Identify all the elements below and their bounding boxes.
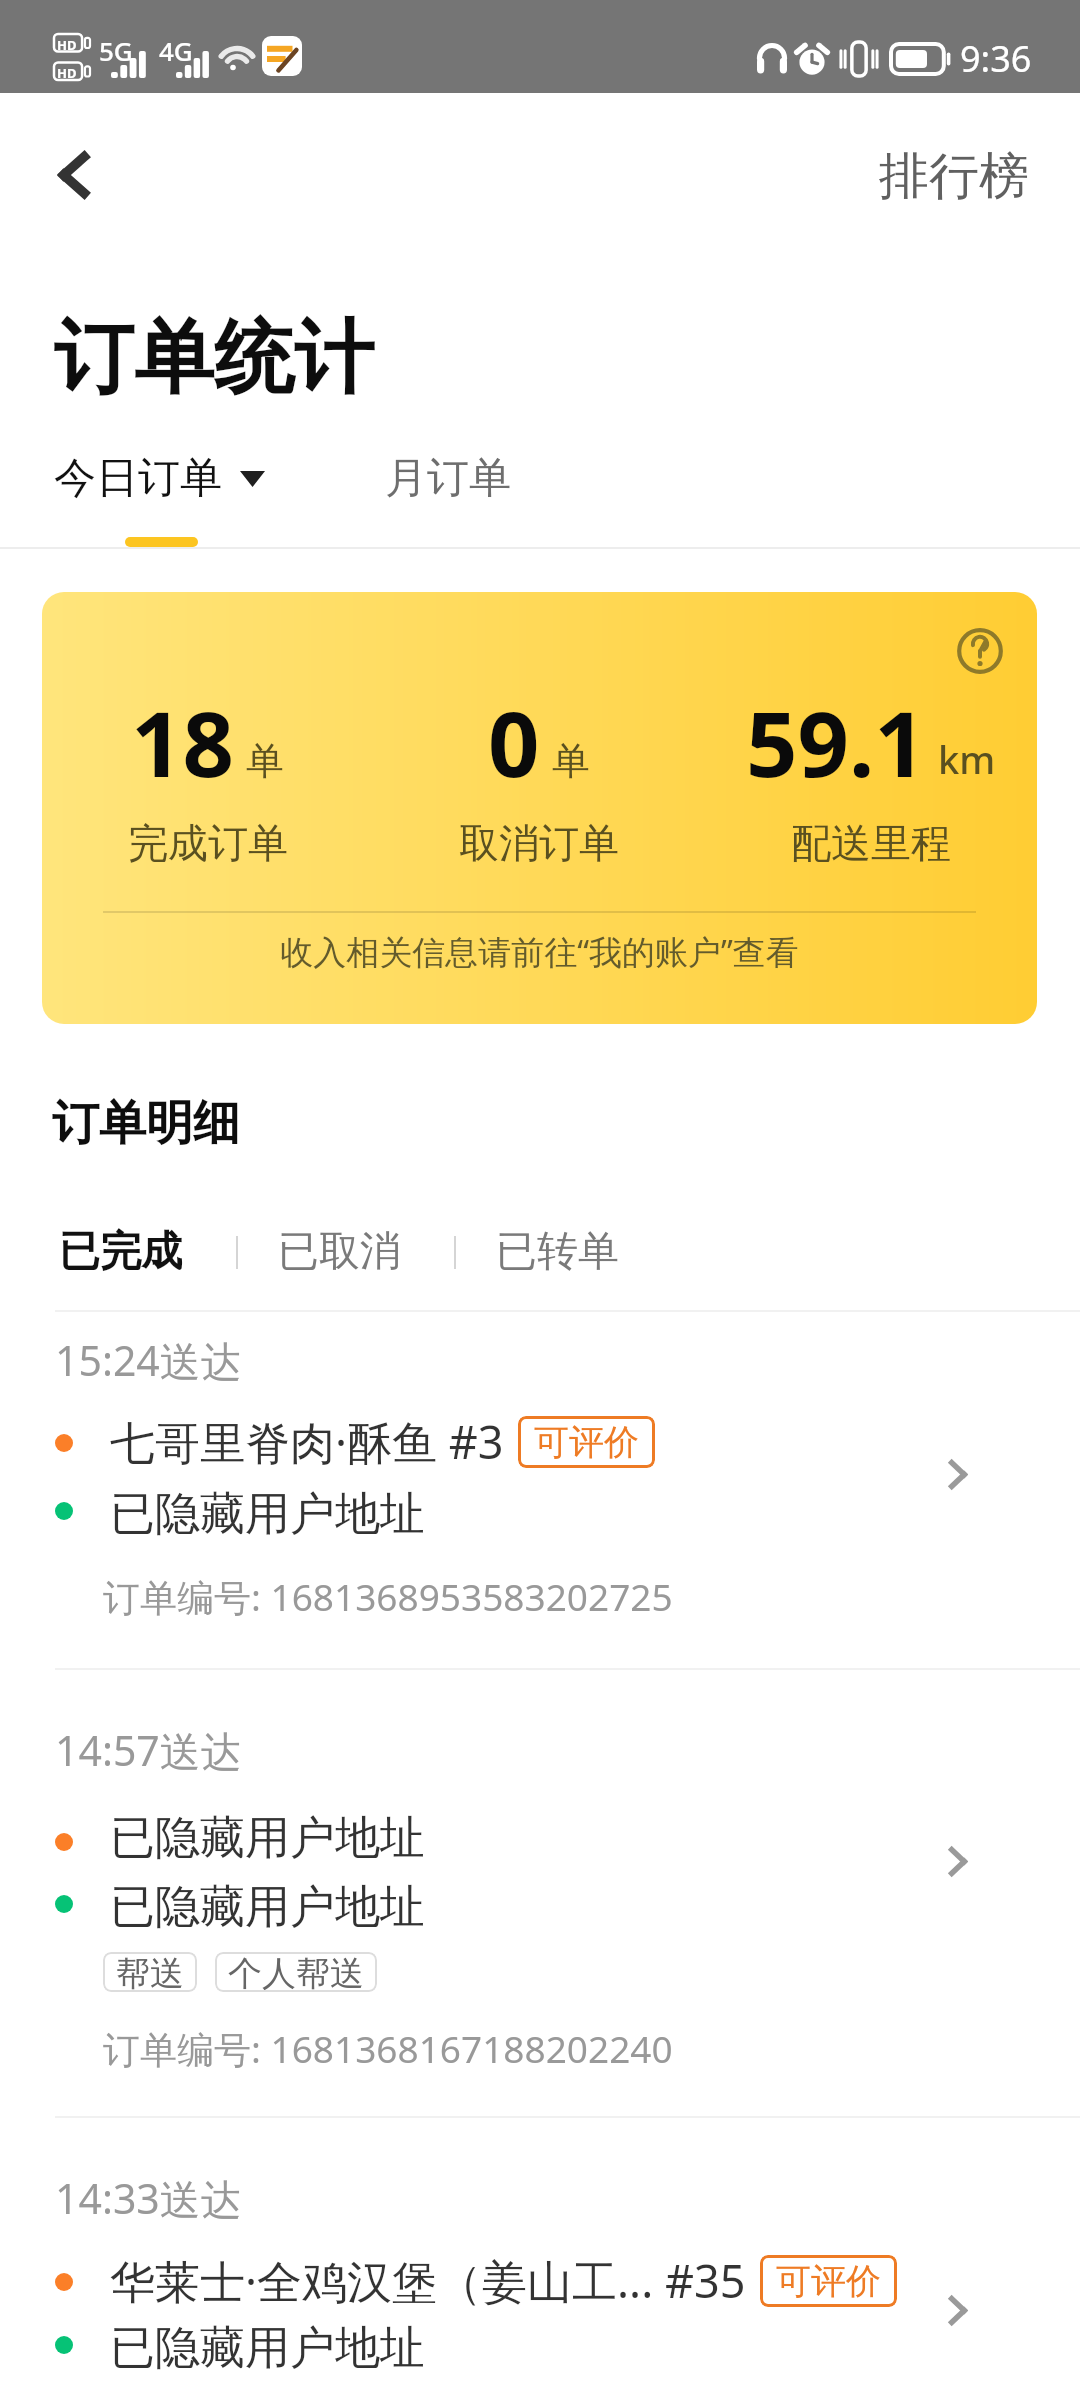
- staticText: 59.1: [746, 681, 926, 804]
- staticText: 14:33送达: [55, 2170, 242, 2226]
- button[interactable]: 15:24送达: [0, 1310, 1080, 1668]
- staticText: 排行榜: [879, 145, 1029, 205]
- staticText: 18: [131, 681, 234, 804]
- staticText: 9:36: [960, 34, 1032, 83]
- staticText: 配送里程: [791, 818, 951, 868]
- staticText: 订单编号: 1681368167188202240: [103, 2023, 673, 2074]
- staticText: 单: [246, 737, 284, 785]
- other: Open order detail: [922, 1438, 994, 1510]
- staticText: 已转单: [496, 1226, 619, 1278]
- staticText: 单: [552, 737, 590, 785]
- button[interactable]: 已取消: [238, 1220, 454, 1284]
- staticText: 七哥里脊肉·酥鱼 #3: [110, 1411, 504, 1472]
- staticText: 15:24送达: [55, 1332, 242, 1388]
- staticText: 4G: [159, 33, 193, 68]
- staticText: 可评价: [534, 1420, 639, 1464]
- staticText: 订单统计: [54, 308, 374, 409]
- staticText: 0: [488, 681, 540, 804]
- button[interactable]: 已完成: [0, 1220, 236, 1284]
- other: Open order detail: [922, 2274, 994, 2346]
- staticText: 已隐藏用户地址: [110, 1486, 425, 1543]
- staticText: 订单明细: [52, 1094, 240, 1153]
- staticText: 个人帮送: [228, 1952, 364, 1992]
- staticText: 已隐藏用户地址: [110, 1879, 425, 1936]
- staticText: 14:57送达: [55, 1722, 242, 1778]
- staticText: 收入相关信息请前往“我的账户”查看: [42, 929, 1037, 974]
- staticText: 订单编号: 1681368953583202725: [103, 1571, 673, 1622]
- staticText: 月订单: [385, 452, 511, 505]
- staticText: 可评价: [776, 2259, 881, 2303]
- staticText: HD: [57, 36, 77, 54]
- staticText: 已取消: [278, 1226, 401, 1278]
- staticText: 已隐藏用户地址: [110, 2320, 425, 2377]
- staticText: km: [938, 733, 996, 785]
- staticText: HD: [57, 64, 77, 82]
- button[interactable]: 月订单: [367, 444, 529, 513]
- button[interactable]: 已转单: [456, 1220, 655, 1284]
- button[interactable]: 14:57送达: [0, 1668, 1080, 2116]
- button[interactable]: 排行榜: [839, 127, 1080, 223]
- button[interactable]: 14:33送达: [0, 2116, 1080, 2388]
- button[interactable]: Back: [26, 127, 122, 223]
- staticText: 取消订单: [459, 818, 619, 868]
- other: Open order detail: [922, 1825, 994, 1897]
- staticText: 已完成: [59, 1226, 182, 1278]
- button[interactable]: Help: [944, 615, 1016, 687]
- staticText: 已隐藏用户地址: [110, 1810, 425, 1867]
- button[interactable]: 今日订单: [0, 444, 287, 513]
- staticText: 5G: [99, 33, 133, 68]
- staticText: 华莱士·全鸡汉堡（姜山工... #35: [110, 2250, 746, 2311]
- staticText: 完成订单: [128, 818, 288, 868]
- staticText: 帮送: [116, 1952, 184, 1992]
- staticText: 今日订单: [54, 452, 222, 505]
